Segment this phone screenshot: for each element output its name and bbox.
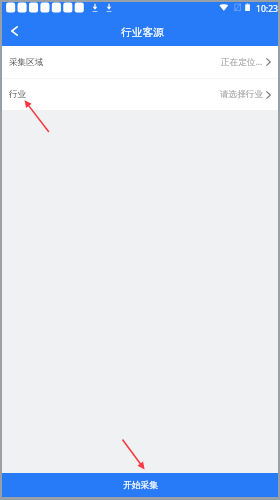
button[interactable]: 采集区域 (2, 46, 278, 78)
staticText: 行业客源 (121, 26, 164, 39)
staticText: 采集区域 (9, 57, 44, 68)
staticText: 行业 (9, 89, 27, 100)
staticText: 请选择行业 (220, 89, 263, 100)
button[interactable]: 开始采集 (2, 473, 278, 497)
staticText: 开始采集 (123, 480, 159, 491)
button[interactable]: Back (2, 15, 27, 46)
button[interactable]: 行业 (2, 79, 278, 110)
staticText: 正在定位... (221, 56, 263, 68)
staticText: 10:23 (256, 3, 278, 15)
